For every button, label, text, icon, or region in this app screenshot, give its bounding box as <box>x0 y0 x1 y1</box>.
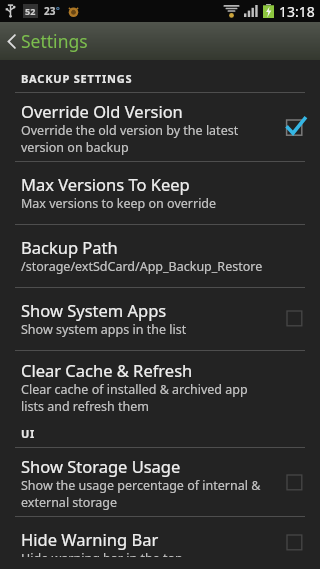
staticText: BACKUP SETTINGS <box>21 71 133 86</box>
staticText: Show the usage percentage of internal & … <box>21 477 277 510</box>
staticText: Settings <box>21 29 88 53</box>
staticText: o <box>56 4 60 12</box>
button[interactable]: Disabled checkbox <box>277 465 313 501</box>
staticText: 13:18 <box>279 2 315 21</box>
button[interactable]: Disabled checkbox <box>277 528 313 557</box>
button[interactable]: Max Versions To Keep <box>0 162 320 224</box>
staticText: 23 <box>44 4 56 18</box>
button[interactable]: Backup Path <box>0 225 320 287</box>
staticText: /storage/extSdCard/App_Backup_Restore <box>21 258 263 275</box>
button[interactable]: Enabled checkbox <box>277 110 313 146</box>
staticText: Show System Apps <box>21 299 167 321</box>
staticText: Hide warning bar in the top <box>21 550 183 557</box>
staticText: Max versions to keep on override <box>21 195 217 212</box>
staticText: Max Versions To Keep <box>21 173 190 195</box>
staticText: Show Storage Usage <box>21 455 181 477</box>
staticText: Override the old version by the latest v… <box>21 122 277 155</box>
button[interactable]: Navigate up <box>0 22 320 60</box>
button[interactable]: Show Storage Usage <box>0 448 320 516</box>
staticText: Show system apps in the list <box>21 321 187 338</box>
button[interactable]: Hide Warning Bar <box>0 517 320 569</box>
staticText: 52 <box>25 5 36 17</box>
staticText: UI <box>21 426 36 441</box>
staticText: Hide Warning Bar <box>21 528 159 550</box>
staticText: Clear cache of installed & archived app … <box>21 381 271 414</box>
button[interactable]: Show System Apps <box>0 288 320 350</box>
staticText: Override Old Version <box>21 100 183 122</box>
staticText: Clear Cache & Refresh <box>21 359 193 381</box>
button[interactable]: Clear Cache & Refresh <box>0 351 320 418</box>
staticText: Backup Path <box>21 236 118 258</box>
button[interactable]: Disabled checkbox <box>277 301 313 337</box>
button[interactable]: Override Old Version <box>0 93 320 161</box>
